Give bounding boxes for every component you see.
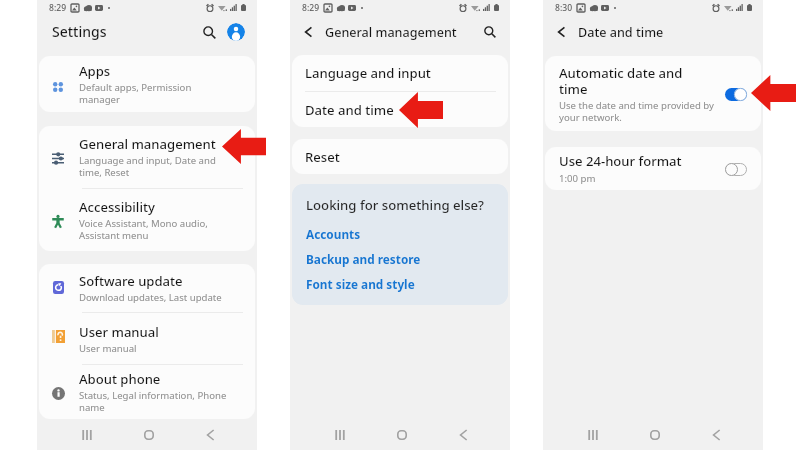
staticText: Accessibility bbox=[79, 198, 155, 216]
staticText: Default apps, Permission manager bbox=[79, 81, 192, 106]
button[interactable]: Accessibility bbox=[39, 189, 255, 251]
staticText: Voice Assistant, Mono audio, Assistant m… bbox=[79, 217, 208, 242]
button[interactable]: Font size and style bbox=[306, 276, 415, 292]
staticText: Automatic date and time bbox=[559, 64, 683, 97]
staticText: User manual bbox=[79, 323, 159, 341]
staticText: Language and input bbox=[305, 64, 431, 82]
staticText: Date and time bbox=[305, 101, 394, 119]
button[interactable]: Home bbox=[133, 420, 165, 450]
button[interactable]: Back bbox=[447, 420, 479, 450]
staticText: Software update bbox=[79, 272, 183, 290]
button[interactable]: About phone bbox=[39, 365, 255, 419]
button[interactable]: Home bbox=[639, 420, 671, 450]
staticText: Looking for something else? bbox=[306, 196, 485, 214]
staticText: Backup and restore bbox=[306, 251, 421, 267]
staticText: Settings bbox=[52, 22, 107, 41]
button[interactable]: Apps bbox=[39, 56, 255, 112]
button[interactable]: General management bbox=[39, 126, 255, 188]
button[interactable]: Accounts bbox=[306, 226, 361, 242]
staticText: General management bbox=[325, 24, 457, 41]
staticText: Accounts bbox=[306, 226, 361, 242]
button[interactable]: Use 24-hour format bbox=[545, 147, 761, 190]
button[interactable]: Reset bbox=[292, 139, 508, 174]
staticText: Font size and style bbox=[306, 276, 415, 292]
button[interactable]: Off bbox=[723, 161, 749, 177]
staticText: 8:29 bbox=[49, 2, 67, 14]
staticText: 8:29 bbox=[302, 2, 320, 14]
button[interactable]: Home bbox=[386, 420, 418, 450]
button[interactable]: Back bbox=[700, 420, 732, 450]
button[interactable]: Date and time bbox=[292, 92, 508, 127]
button[interactable]: Back bbox=[552, 23, 570, 41]
button[interactable]: Search bbox=[199, 22, 219, 42]
button[interactable]: Back bbox=[194, 420, 226, 450]
button[interactable]: Recents bbox=[324, 420, 356, 450]
button[interactable]: Automatic date and time bbox=[545, 56, 761, 131]
staticText: User manual bbox=[79, 342, 137, 355]
staticText: Reset bbox=[305, 148, 340, 166]
button[interactable]: Back bbox=[299, 23, 317, 41]
staticText: Download updates, Last update bbox=[79, 291, 222, 304]
staticText: General management bbox=[79, 135, 216, 153]
button[interactable]: On bbox=[723, 86, 749, 102]
button[interactable]: User manual bbox=[39, 313, 255, 364]
button[interactable]: Recents bbox=[71, 420, 103, 450]
staticText: Use the date and time provided by your n… bbox=[559, 99, 714, 124]
staticText: Date and time bbox=[578, 24, 664, 41]
button[interactable]: Language and input bbox=[292, 55, 508, 91]
staticText: About phone bbox=[79, 370, 161, 388]
staticText: 8:30 bbox=[555, 2, 573, 14]
button[interactable]: Search bbox=[481, 23, 499, 41]
button[interactable]: Account bbox=[226, 22, 246, 42]
staticText: 1:00 pm bbox=[559, 172, 596, 185]
staticText: Apps bbox=[79, 62, 111, 80]
button[interactable]: Recents bbox=[577, 420, 609, 450]
staticText: Language and input, Date and time, Reset bbox=[79, 154, 216, 179]
button[interactable]: Backup and restore bbox=[306, 251, 421, 267]
staticText: Status, Legal information, Phone name bbox=[79, 389, 227, 414]
staticText: Use 24-hour format bbox=[559, 152, 682, 170]
button[interactable]: Software update bbox=[39, 264, 255, 312]
